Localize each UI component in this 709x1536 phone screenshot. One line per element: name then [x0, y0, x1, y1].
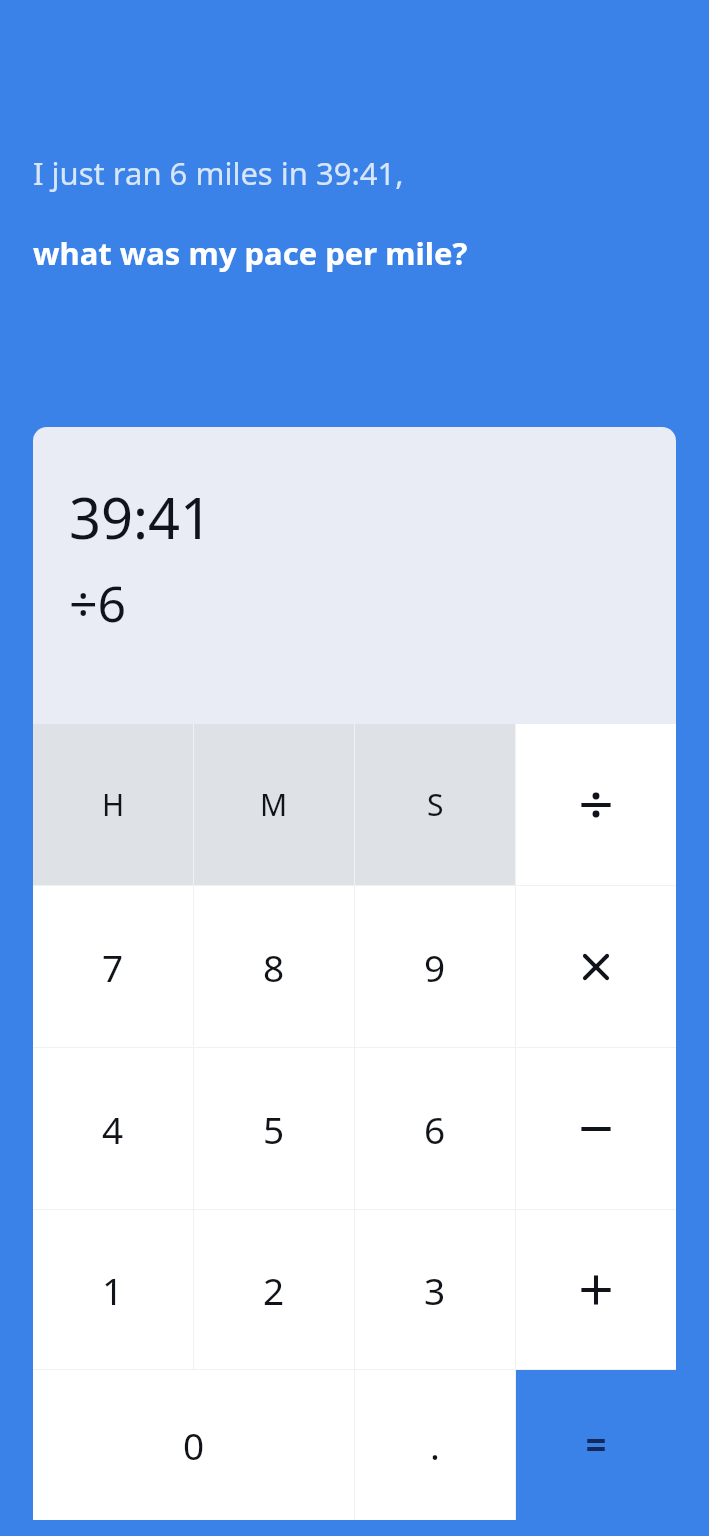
staticText: M	[260, 784, 288, 825]
staticText: 4	[102, 1104, 124, 1154]
button[interactable]: 3	[355, 1210, 515, 1369]
button[interactable]: .	[355, 1370, 515, 1520]
button[interactable]: 7	[33, 886, 193, 1047]
button[interactable]: 1	[33, 1210, 193, 1369]
button[interactable]: 0	[33, 1370, 354, 1520]
staticText: 6	[424, 1104, 446, 1154]
staticText: 9	[424, 942, 446, 992]
staticText: what was my pace per mile?	[33, 232, 468, 274]
button[interactable]: S	[355, 724, 515, 885]
staticText: 3	[424, 1265, 446, 1315]
staticText: 8	[263, 942, 285, 992]
button[interactable]: H	[33, 724, 193, 885]
staticText: .	[430, 1420, 440, 1470]
button[interactable]: Subtract	[516, 1048, 676, 1209]
button[interactable]: 39:41	[33, 427, 676, 724]
button[interactable]: Add	[516, 1210, 676, 1369]
button[interactable]: Divide	[516, 724, 676, 885]
staticText: ÷6	[69, 569, 127, 637]
button[interactable]: 4	[33, 1048, 193, 1209]
staticText: 39:41	[69, 479, 213, 555]
staticText: 5	[263, 1104, 285, 1154]
button[interactable]: Equals	[516, 1370, 676, 1520]
staticText: 7	[102, 942, 124, 992]
staticText: H	[102, 784, 125, 825]
button[interactable]: 9	[355, 886, 515, 1047]
staticText: 1	[102, 1265, 124, 1315]
button[interactable]: 6	[355, 1048, 515, 1209]
button[interactable]: Multiply	[516, 886, 676, 1047]
button[interactable]: 5	[194, 1048, 354, 1209]
staticText: 0	[183, 1420, 205, 1470]
staticText: 2	[263, 1265, 285, 1315]
staticText: I just ran 6 miles in 39:41,	[33, 152, 404, 194]
staticText: S	[427, 784, 444, 825]
button[interactable]: 2	[194, 1210, 354, 1369]
button[interactable]: 8	[194, 886, 354, 1047]
button[interactable]: M	[194, 724, 354, 885]
